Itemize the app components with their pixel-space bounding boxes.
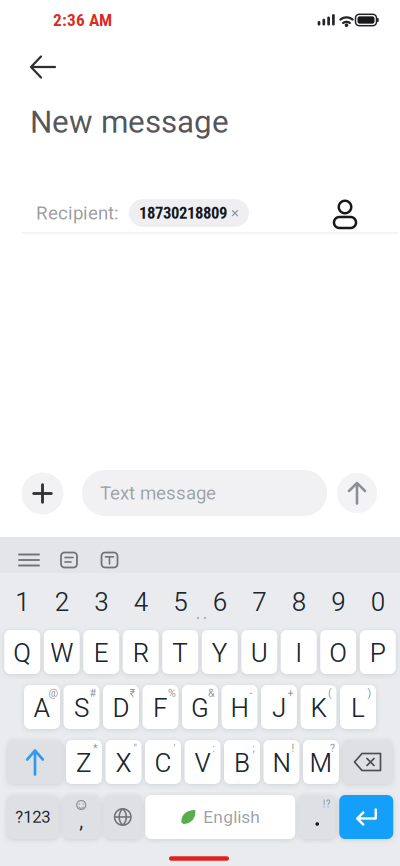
staticText: R <box>133 638 149 668</box>
staticText: Text message <box>100 482 216 504</box>
staticText: N <box>272 748 290 778</box>
staticText: W <box>50 638 73 668</box>
button[interactable] <box>332 200 357 228</box>
button[interactable]: I <box>281 630 317 674</box>
staticText: P <box>370 638 386 668</box>
staticText: M <box>309 748 332 778</box>
button[interactable]: Z <box>66 740 102 784</box>
staticText: D <box>112 693 129 723</box>
staticText: 4 <box>134 587 148 617</box>
button[interactable] <box>7 740 62 784</box>
button[interactable]: J <box>261 685 297 729</box>
staticText: Z <box>76 748 92 778</box>
staticText: Recipient: <box>36 202 119 224</box>
button[interactable] <box>21 472 63 514</box>
button[interactable]: D <box>103 685 139 729</box>
staticText: @ <box>48 687 58 699</box>
button[interactable]: H <box>221 685 257 729</box>
button[interactable]: 9 <box>318 580 358 624</box>
staticText: Y <box>212 638 228 668</box>
staticText: ?123 <box>15 807 50 827</box>
button[interactable]: Text message <box>82 470 327 516</box>
button[interactable]: 3 <box>81 580 121 624</box>
button[interactable] <box>19 553 39 566</box>
staticText: % <box>168 687 176 699</box>
staticText: : <box>212 742 215 754</box>
staticText: 2:36 AM <box>53 10 112 30</box>
button[interactable]: Y <box>202 630 238 674</box>
button[interactable] <box>342 740 392 784</box>
button[interactable]: K <box>300 685 336 729</box>
button[interactable]: E <box>83 630 119 674</box>
staticText: A <box>33 693 50 723</box>
button[interactable]: 2 <box>42 580 81 624</box>
staticText: English <box>203 807 260 827</box>
button[interactable]: C <box>145 740 181 784</box>
staticText: + <box>287 687 293 699</box>
button[interactable]: Q <box>4 630 40 674</box>
button[interactable] <box>104 795 142 839</box>
staticText: I <box>295 638 302 668</box>
button[interactable] <box>61 552 77 567</box>
button[interactable]: 8 <box>279 580 318 624</box>
staticText: ₹ <box>129 687 135 699</box>
button[interactable]: !? <box>299 795 336 839</box>
staticText: , <box>79 809 83 833</box>
button[interactable]: ?123 <box>7 795 59 839</box>
staticText: O <box>329 638 347 668</box>
button[interactable]: W <box>44 630 80 674</box>
button[interactable]: 6 <box>200 580 239 624</box>
button[interactable]: 5 <box>160 580 200 624</box>
staticText: V <box>194 748 210 778</box>
staticText: L <box>351 693 365 723</box>
staticText: & <box>208 687 215 699</box>
button[interactable]: G <box>182 685 218 729</box>
button[interactable]: 4 <box>121 580 160 624</box>
button[interactable] <box>339 795 393 839</box>
button[interactable] <box>101 552 117 567</box>
button[interactable]: U <box>241 630 277 674</box>
staticText: ! <box>291 742 294 754</box>
staticText: 2 <box>55 587 69 617</box>
button[interactable]: 1 <box>2 580 42 624</box>
button[interactable]: 18730218809 <box>129 199 249 227</box>
button[interactable]: B <box>224 740 260 784</box>
button[interactable]: N <box>263 740 299 784</box>
button[interactable]: P <box>360 630 396 674</box>
button[interactable]: English <box>145 795 295 839</box>
staticText: 5 <box>173 587 187 617</box>
staticText: !? <box>323 798 331 810</box>
staticText: T <box>172 638 188 668</box>
button[interactable]: A <box>24 685 60 729</box>
button[interactable]: F <box>142 685 178 729</box>
staticText: C <box>154 748 171 778</box>
button[interactable]: O <box>320 630 356 674</box>
button[interactable]: 7 <box>239 580 279 624</box>
staticText: 9 <box>331 587 345 617</box>
button[interactable]: R <box>123 630 159 674</box>
button[interactable]: T <box>162 630 198 674</box>
staticText: 0 <box>371 587 385 617</box>
staticText: ) <box>367 687 371 699</box>
staticText: E <box>94 638 109 668</box>
button[interactable]: V <box>184 740 220 784</box>
button[interactable]: S <box>63 685 99 729</box>
staticText: ; <box>252 742 254 754</box>
button[interactable] <box>29 55 57 78</box>
staticText: Q <box>13 638 31 668</box>
staticText: 8 <box>292 587 306 617</box>
staticText: ' <box>173 742 175 754</box>
staticText: G <box>191 693 209 723</box>
button[interactable]: M <box>303 740 339 784</box>
staticText: × <box>231 204 239 222</box>
button[interactable]: X <box>105 740 141 784</box>
staticText: S <box>74 693 89 723</box>
button[interactable]: L <box>340 685 376 729</box>
button[interactable]: 0 <box>358 580 397 624</box>
button[interactable] <box>337 473 377 513</box>
staticText: 7 <box>252 587 266 617</box>
staticText: 6 <box>213 587 227 617</box>
staticText: New message <box>30 104 229 140</box>
staticText: 1 <box>15 587 29 617</box>
button[interactable]: , <box>62 795 100 839</box>
